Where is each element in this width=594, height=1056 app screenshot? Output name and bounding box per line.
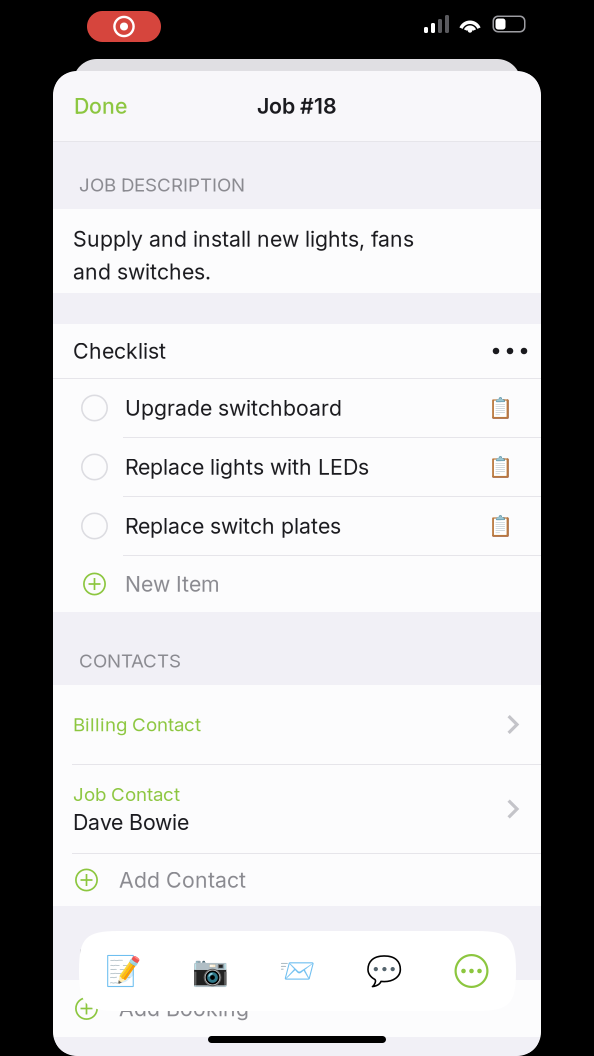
button[interactable]: Add note	[80, 931, 167, 1011]
staticText: 📋	[488, 455, 513, 479]
button[interactable]: Add Contact	[53, 854, 541, 906]
staticText: 📋	[488, 396, 513, 420]
staticText: Add Booking	[119, 996, 249, 1021]
button[interactable]: New Item	[53, 556, 541, 612]
staticText: CONTACTS	[79, 649, 181, 672]
button[interactable]: More	[479, 324, 541, 377]
staticText: Replace switch plates	[125, 513, 341, 539]
staticText: Job #18	[257, 93, 337, 119]
button[interactable]: Send message	[341, 931, 428, 1011]
button[interactable]: Add Booking	[53, 980, 541, 1037]
staticText: 💬	[366, 954, 403, 988]
button[interactable]: More actions	[428, 931, 515, 1011]
button[interactable]: Send email	[254, 931, 341, 1011]
staticText: and switches.	[73, 259, 211, 285]
staticText: Add Contact	[119, 867, 246, 893]
staticText: Checklist	[73, 338, 166, 364]
button[interactable]: Upgrade switchboard	[53, 379, 541, 437]
button[interactable]: Done	[53, 79, 143, 133]
staticText: Replace lights with LEDs	[125, 454, 369, 480]
button[interactable]: Replace switch plates	[53, 497, 541, 555]
staticText: 📨	[279, 954, 316, 988]
staticText: 📷	[192, 954, 229, 988]
staticText: Dave Bowie	[73, 809, 189, 835]
staticText: New Item	[125, 571, 220, 597]
staticText: 📋	[488, 514, 513, 538]
button[interactable]: Replace lights with LEDs	[53, 438, 541, 496]
staticText: Job Contact	[73, 783, 180, 805]
staticText: 📝	[105, 954, 142, 988]
button[interactable]: Billing Contact	[53, 685, 541, 764]
button[interactable]: Take photo	[167, 931, 254, 1011]
staticText: BOOKINGS	[79, 944, 177, 967]
staticText: Upgrade switchboard	[125, 395, 342, 421]
staticText: Done	[74, 93, 127, 119]
staticText: JOB DESCRIPTION	[79, 173, 245, 196]
button[interactable]: Job Contact	[53, 765, 541, 853]
staticText: Billing Contact	[73, 713, 201, 736]
staticText: Supply and install new lights, fans	[73, 226, 414, 252]
